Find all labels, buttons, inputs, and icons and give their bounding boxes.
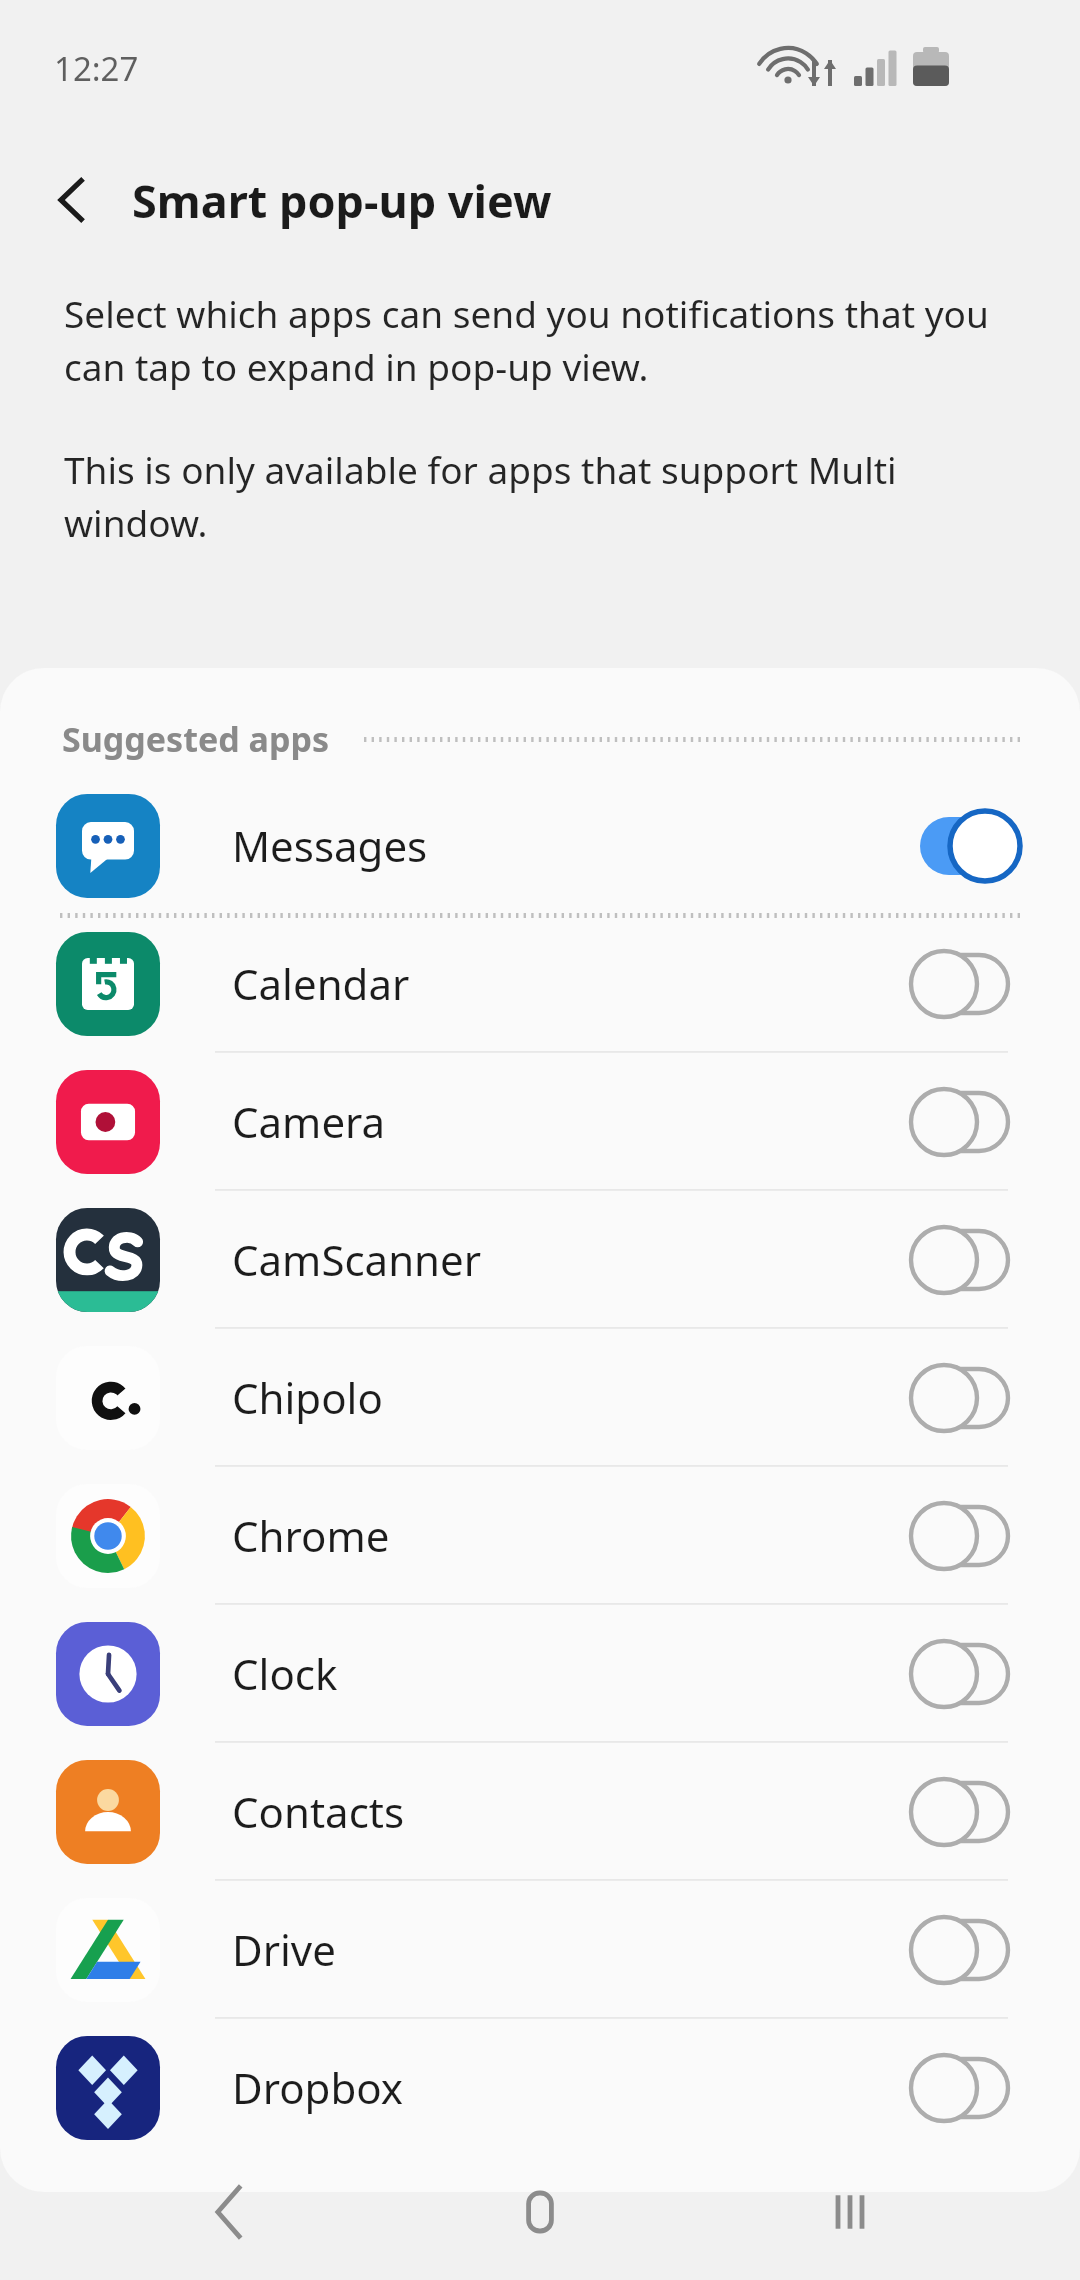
button[interactable]: Switch off [912,934,1030,1034]
staticText: 12:27 [54,46,139,91]
button[interactable]: Switch off [912,1210,1030,1310]
staticText: This is only available for apps that sup… [64,444,1014,548]
staticText: Dropbox [232,2059,912,2116]
button[interactable]: Switch off [912,1348,1030,1448]
staticText: Contacts [232,1783,912,1840]
button[interactable]: Switch off [912,2038,1030,2138]
button[interactable]: Switch off [912,1486,1030,1586]
button[interactable]: Messages [0,778,1080,913]
button[interactable]: Switch off [912,1762,1030,1862]
staticText: Chipolo [232,1369,912,1426]
staticText: Calendar [232,955,912,1012]
button[interactable]: Dropbox [0,2020,1080,2155]
button[interactable]: Back [24,152,120,248]
staticText: CamScanner [232,1231,912,1288]
staticText: Camera [232,1093,912,1150]
button[interactable]: Calendar [0,916,1080,1051]
button[interactable]: CamScanner [0,1192,1080,1327]
staticText: Messages [232,817,912,874]
button[interactable]: Clock [0,1606,1080,1741]
button[interactable]: Recents [770,2150,930,2274]
staticText: Clock [232,1645,912,1702]
button[interactable]: Camera [0,1054,1080,1189]
staticText: Suggested apps [62,716,329,762]
staticText: Smart pop-up view [132,170,552,231]
button[interactable]: Switch off [912,1624,1030,1724]
button[interactable]: Switch off [912,1900,1030,2000]
staticText: Drive [232,1921,912,1978]
button[interactable]: Contacts [0,1744,1080,1879]
button[interactable]: Chrome [0,1468,1080,1603]
button[interactable]: Chipolo [0,1330,1080,1465]
button[interactable]: Home [460,2150,620,2274]
button[interactable]: Drive [0,1882,1080,2017]
button[interactable]: Back [150,2150,310,2274]
button[interactable]: Switch on [912,796,1030,896]
staticText: Chrome [232,1507,912,1564]
staticText: Select which apps can send you notificat… [64,288,1014,392]
button[interactable]: Switch off [912,1072,1030,1172]
